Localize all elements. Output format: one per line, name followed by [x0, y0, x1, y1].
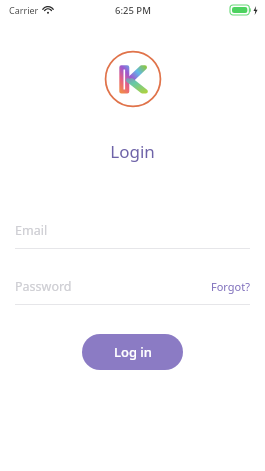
staticText: Log in — [114, 343, 152, 361]
staticText: Password — [15, 278, 72, 295]
button[interactable]: Log in — [82, 334, 183, 370]
staticText: 6:25 PM — [115, 4, 151, 17]
staticText: Forgot? — [211, 279, 250, 294]
button[interactable]: Email — [15, 219, 250, 241]
button[interactable]: Forgot? — [211, 275, 250, 297]
staticText: Email — [15, 222, 48, 239]
staticText: Login — [110, 140, 155, 163]
staticText: Carrier — [9, 4, 39, 16]
button[interactable]: Password — [15, 275, 211, 297]
